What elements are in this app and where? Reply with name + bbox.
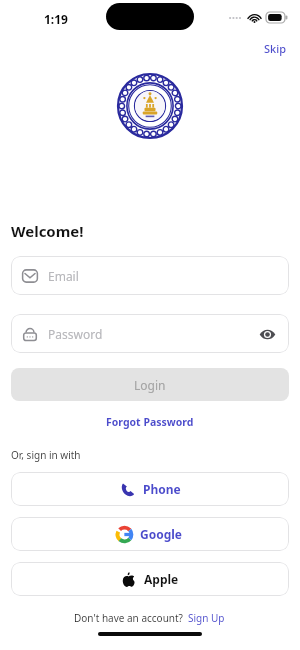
button[interactable]: Skip bbox=[250, 38, 300, 59]
staticText: Phone bbox=[143, 481, 181, 497]
button[interactable]: Apple bbox=[11, 562, 289, 596]
button[interactable]: Google bbox=[11, 517, 289, 551]
staticText: Welcome! bbox=[11, 221, 84, 241]
staticText: Login bbox=[134, 377, 166, 393]
button[interactable]: Show password bbox=[255, 322, 279, 346]
button[interactable]: Forgot Password bbox=[100, 413, 200, 431]
button[interactable]: Phone bbox=[11, 472, 289, 506]
staticText: Password bbox=[48, 326, 103, 342]
staticText: Apple bbox=[144, 571, 179, 587]
staticText: 1:19 bbox=[44, 11, 68, 27]
staticText: Google bbox=[140, 526, 183, 542]
staticText: Or, sign in with bbox=[11, 448, 81, 462]
button[interactable]: Sign Up bbox=[186, 609, 227, 627]
staticText: Email bbox=[48, 268, 79, 284]
button[interactable]: Email bbox=[11, 256, 289, 295]
staticText: Don't have an account? bbox=[74, 611, 186, 625]
button[interactable]: Login bbox=[11, 368, 289, 401]
button[interactable]: Password bbox=[11, 314, 289, 353]
